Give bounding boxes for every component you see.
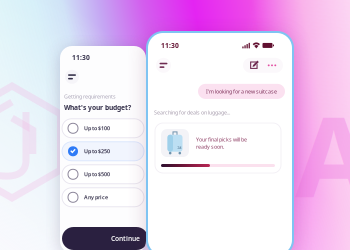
button[interactable]: More options bbox=[267, 60, 277, 70]
staticText: What's your budget? bbox=[64, 103, 131, 112]
staticText: A bbox=[295, 80, 350, 229]
button[interactable]: New chat bbox=[249, 60, 259, 70]
staticText: Up to $250 bbox=[84, 148, 110, 155]
staticText: I'm looking for a new suitcase bbox=[206, 88, 277, 95]
staticText: 11:30 bbox=[161, 41, 179, 50]
staticText: Up to $100 bbox=[84, 125, 110, 132]
staticText: Up to $500 bbox=[84, 171, 110, 178]
button[interactable]: Up to $500 bbox=[62, 165, 144, 184]
button[interactable]: Any price bbox=[62, 188, 144, 207]
button[interactable]: Continue bbox=[62, 227, 148, 250]
staticText: Continue bbox=[111, 234, 140, 243]
staticText: 24 bbox=[177, 145, 181, 150]
staticText: 11:30 bbox=[72, 53, 90, 62]
button[interactable]: Menu bbox=[65, 70, 79, 84]
staticText: Your final picks will be ready soon. bbox=[196, 136, 247, 150]
staticText: Getting requirements bbox=[64, 93, 116, 100]
staticText: Any price bbox=[84, 194, 108, 201]
staticText: Searching for deals on luggage... bbox=[154, 109, 230, 116]
button[interactable]: Up to $100 bbox=[62, 119, 144, 138]
button[interactable]: Up to $250 bbox=[62, 142, 144, 161]
button[interactable]: Menu bbox=[156, 58, 171, 73]
